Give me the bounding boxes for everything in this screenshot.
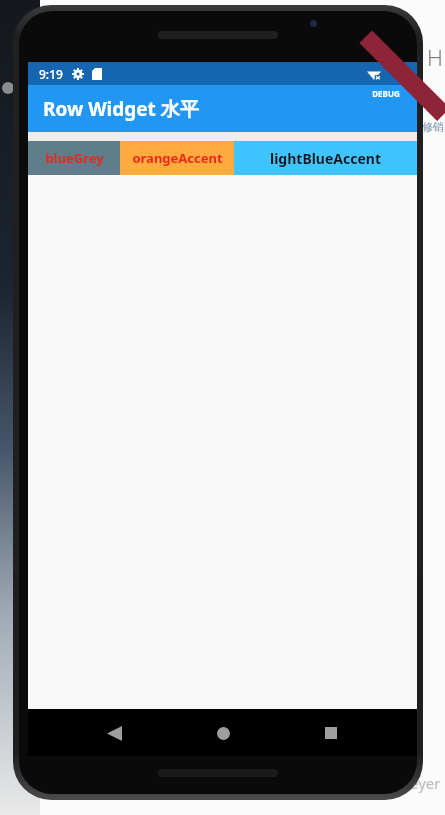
button[interactable]: Recent apps (309, 711, 353, 755)
staticText: blueGrey (45, 149, 104, 167)
staticText: 修销 (422, 120, 444, 134)
button[interactable]: lightBlueAccent (234, 141, 417, 175)
button[interactable]: Home (201, 711, 245, 755)
staticText: lightBlueAccent (270, 149, 381, 168)
staticText: Row Widget 水平 (43, 96, 199, 122)
staticText: H (427, 42, 443, 72)
button[interactable]: orangeAccent (120, 141, 234, 175)
staticText: 9:19 (39, 66, 63, 82)
button[interactable]: Back (92, 711, 136, 755)
staticText: DEBUG (372, 88, 400, 99)
button[interactable]: blueGrey (28, 141, 120, 175)
staticText: orangeAccent (132, 149, 223, 167)
staticText: https://blog.csdn.net/RedKeyer (221, 773, 441, 793)
